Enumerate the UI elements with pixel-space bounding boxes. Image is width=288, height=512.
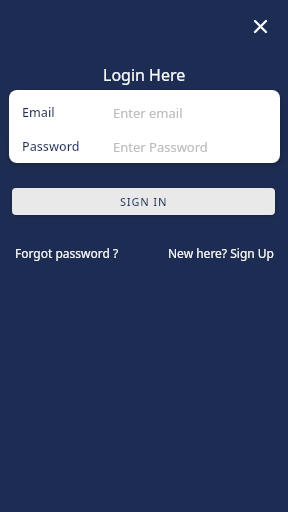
staticText: New here? Sign Up <box>168 245 274 261</box>
staticText: Password <box>22 138 80 154</box>
staticText: Enter Password <box>113 138 208 154</box>
staticText: Login Here <box>103 64 186 86</box>
button[interactable]: Forgot password ? <box>15 245 119 261</box>
staticText: Enter email <box>113 104 183 120</box>
button[interactable]: SIGN IN <box>12 188 275 215</box>
staticText: Email <box>22 104 55 120</box>
button[interactable]: Password <box>9 138 280 154</box>
staticText: SIGN IN <box>120 194 168 209</box>
staticText: Forgot password ? <box>15 245 119 261</box>
button[interactable] <box>246 12 274 40</box>
button[interactable]: Email <box>9 104 280 120</box>
button[interactable]: New here? Sign Up <box>168 245 274 261</box>
